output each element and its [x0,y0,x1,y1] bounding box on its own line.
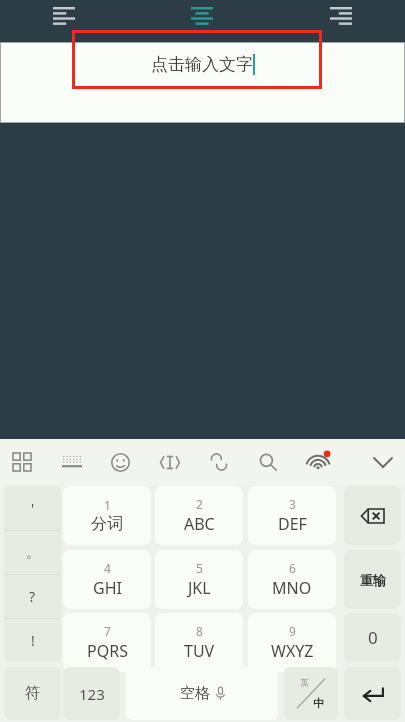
button[interactable]: Enter [344,667,401,720]
staticText: 7 [104,623,111,639]
staticText: 点击输入文字 [151,54,253,75]
staticText: 1 [104,497,111,513]
staticText: JKL [188,577,211,599]
button[interactable]: ? [4,575,61,618]
staticText: ABC [184,513,215,535]
button[interactable]: 1 [63,486,151,545]
staticText: 2 [196,496,203,512]
staticText: 3 [289,496,296,512]
staticText: WXYZ [271,640,314,662]
staticText: 中 [313,696,324,710]
staticText: 空格 [180,684,210,703]
staticText: 分词 [91,514,123,534]
button[interactable]: Hide keyboard [363,439,403,485]
staticText: 。 [26,544,40,562]
button[interactable]: 4 [63,550,151,609]
staticText: 6 [289,560,296,576]
button[interactable]: 2 [155,486,243,545]
button[interactable]: Align center [184,0,220,30]
button[interactable]: 123 [63,667,120,720]
button[interactable]: 3 [248,486,336,545]
button[interactable]: 重输 [344,550,401,609]
staticText: DEF [278,513,307,535]
button[interactable]: 英 [284,667,338,720]
staticText: ! [31,631,35,650]
other: Backspace [361,508,385,524]
staticText: 4 [104,560,111,576]
button[interactable]: 8 [155,613,243,672]
button[interactable]: 点击输入文字 [0,42,405,123]
staticText: 英 [300,677,309,688]
button[interactable]: 。 [4,531,61,574]
button[interactable]: Align left [46,0,82,30]
staticText: MNO [272,577,312,599]
staticText: 符 [25,684,40,703]
staticText: TUV [184,640,215,662]
button[interactable]: 0 [344,613,401,662]
button[interactable]: 符 [4,667,61,720]
button[interactable]: 空格 [126,667,278,720]
other: Enter [362,686,384,702]
staticText: 9 [289,623,296,639]
staticText: 0 [368,626,378,649]
staticText: 8 [196,623,203,639]
button[interactable]: Wi-Fi [298,439,338,485]
staticText: ' [31,499,35,518]
staticText: 123 [79,684,105,704]
button[interactable]: 5 [155,550,243,609]
button[interactable]: Backspace [344,486,401,545]
staticText: PQRS [87,640,128,662]
button[interactable]: Keyboard layout [52,439,92,485]
button[interactable]: Align right [323,0,359,30]
button[interactable]: Search [248,439,288,485]
button[interactable]: ' [4,486,61,530]
button[interactable]: Clipboard [199,439,239,485]
button[interactable]: 7 [63,613,151,672]
button[interactable]: Emoji [100,439,140,485]
staticText: ? [29,587,36,606]
button[interactable]: 9 [248,613,336,672]
staticText: 重输 [360,572,386,588]
button[interactable]: Apps [2,439,42,485]
staticText: GHI [93,577,122,599]
button[interactable]: Text tools [150,439,190,485]
button[interactable]: ! [4,619,61,662]
button[interactable]: 6 [248,550,336,609]
staticText: 5 [196,560,203,576]
